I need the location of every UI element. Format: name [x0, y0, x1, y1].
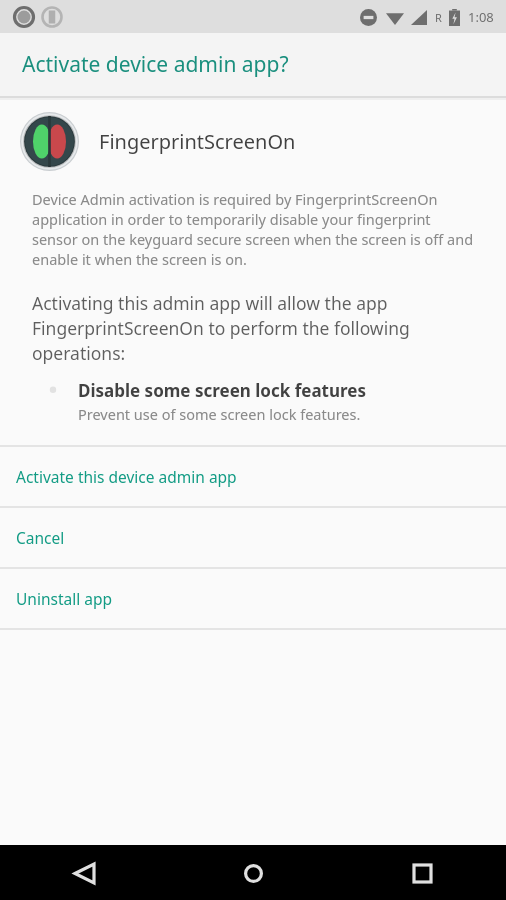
- staticText: Prevent use of some screen lock features…: [78, 404, 361, 424]
- staticText: 1:08: [468, 8, 494, 26]
- staticText: Activate this device admin app: [16, 466, 237, 487]
- staticText: Activating this admin app will allow the…: [32, 291, 446, 365]
- staticText: Uninstall app: [16, 588, 112, 609]
- staticText: Device Admin activation is required by F…: [32, 189, 478, 269]
- staticText: Cancel: [16, 527, 65, 548]
- staticText: FingerprintScreenOn: [99, 128, 296, 155]
- button[interactable]: Back: [60, 849, 108, 897]
- staticText: R: [435, 10, 442, 25]
- staticText: Activate device admin app?: [22, 50, 289, 79]
- button[interactable]: Cancel: [0, 508, 506, 567]
- button[interactable]: Activate this device admin app: [0, 447, 506, 506]
- button[interactable]: Home: [229, 849, 277, 897]
- button[interactable]: Recent apps: [398, 849, 446, 897]
- button[interactable]: Uninstall app: [0, 569, 506, 628]
- staticText: Disable some screen lock features: [78, 379, 366, 402]
